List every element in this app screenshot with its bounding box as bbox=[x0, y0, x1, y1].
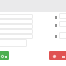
button[interactable]: Date bbox=[59, 13, 66, 19]
button[interactable]: Name bbox=[0, 14, 33, 19]
button[interactable]: Amount bbox=[59, 32, 66, 39]
button[interactable]: Time bbox=[59, 21, 66, 27]
button[interactable]: Phone bbox=[0, 24, 33, 29]
button[interactable]: City bbox=[0, 34, 33, 39]
button[interactable]: Address bbox=[0, 29, 33, 34]
button[interactable]: Cancel bbox=[49, 51, 66, 60]
button[interactable]: Notes bbox=[0, 39, 27, 47]
button[interactable]: Email bbox=[0, 19, 33, 24]
button[interactable]: Save bbox=[0, 51, 9, 60]
